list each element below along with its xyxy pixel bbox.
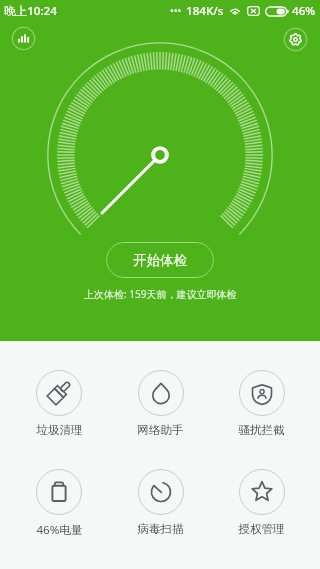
button[interactable]: 网络助手: [110, 370, 211, 438]
button[interactable]: 46%电量: [8, 469, 110, 538]
button[interactable]: 开始体检: [106, 242, 214, 278]
staticText: •••: [170, 4, 182, 18]
staticText: 网络助手: [137, 423, 184, 438]
staticText: 骚扰拦截: [238, 423, 285, 438]
staticText: 46%: [292, 3, 316, 19]
staticText: 46%电量: [36, 522, 83, 538]
button[interactable]: Settings: [283, 27, 308, 52]
staticText: 病毒扫描: [137, 522, 184, 537]
staticText: 垃圾清理: [36, 423, 83, 438]
button[interactable]: 授权管理: [211, 469, 312, 537]
staticText: 上次体检: 159天前，建议立即体检: [84, 287, 237, 301]
button[interactable]: 骚扰拦截: [211, 370, 312, 438]
staticText: 184K/s: [186, 3, 224, 19]
button[interactable]: 病毒扫描: [110, 469, 211, 537]
button[interactable]: Statistics: [11, 26, 36, 51]
staticText: 授权管理: [238, 522, 285, 537]
staticText: 开始体检: [133, 252, 187, 269]
staticText: 晚上10:24: [4, 3, 57, 19]
button[interactable]: 垃圾清理: [8, 370, 110, 438]
